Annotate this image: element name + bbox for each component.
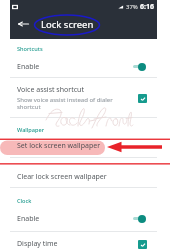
staticText: Voice assist shortcut — [17, 85, 84, 95]
staticText: Shortcuts — [17, 45, 43, 53]
button[interactable]: Enable — [10, 59, 157, 75]
staticText: Enable — [17, 62, 40, 72]
staticText: Clock — [17, 197, 32, 205]
button[interactable]: Checkbox — [138, 240, 147, 249]
button[interactable]: Toggle — [132, 61, 145, 72]
staticText: 37% — [126, 3, 138, 11]
staticText: shortcut — [17, 103, 41, 111]
staticText: Enable — [17, 214, 40, 224]
staticText: Wallpaper — [17, 126, 45, 134]
staticText: Clear lock screen wallpaper — [17, 172, 107, 182]
staticText: 6:16 — [140, 2, 154, 12]
button[interactable]: Checkbox — [138, 94, 147, 103]
button[interactable]: Set lock screen wallpaper — [10, 138, 157, 154]
staticText: Set lock screen wallpaper — [17, 141, 101, 151]
button[interactable]: Display time — [10, 236, 157, 250]
button[interactable]: Voice assist shortcut — [10, 82, 157, 98]
staticText: Display time — [17, 239, 58, 249]
staticText: Lock screen — [41, 18, 94, 31]
staticText: Show voice assist instead of dialer — [17, 96, 113, 104]
button[interactable]: Back — [10, 11, 36, 37]
button[interactable]: Enable — [10, 211, 157, 227]
button[interactable]: Toggle — [132, 213, 145, 224]
button[interactable]: Clear lock screen wallpaper — [10, 169, 157, 185]
